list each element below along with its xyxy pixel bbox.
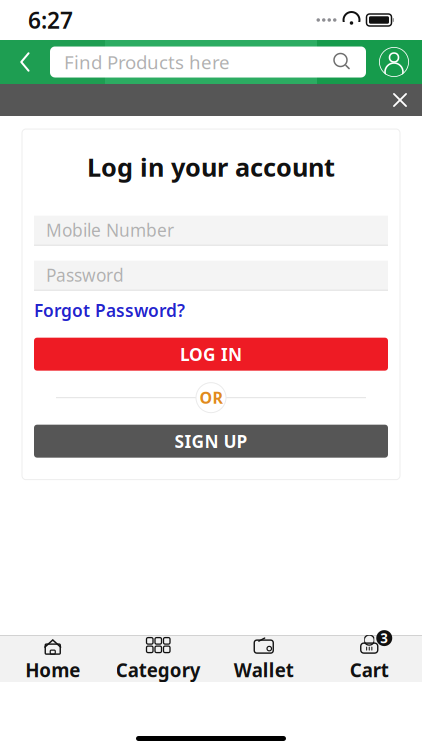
- staticText: Home: [25, 658, 80, 682]
- button[interactable]: Password: [34, 261, 388, 291]
- button[interactable]: Find Products here: [50, 46, 366, 77]
- button[interactable]: Category: [105, 636, 211, 682]
- button[interactable]: Forgot Password?: [34, 299, 185, 322]
- button[interactable]: SIGN UP: [34, 425, 388, 458]
- staticText: SIGN UP: [174, 430, 247, 453]
- staticText: Forgot Password?: [34, 299, 185, 322]
- button[interactable]: Wallet: [211, 636, 316, 682]
- button[interactable]: Mobile Number: [34, 216, 388, 246]
- staticText: LOG IN: [180, 343, 242, 366]
- staticText: Category: [116, 658, 201, 682]
- staticText: Find Products here: [64, 50, 230, 74]
- button[interactable]: Home: [0, 636, 105, 682]
- staticText: 6:27: [28, 5, 73, 35]
- button[interactable]: Account: [366, 40, 422, 84]
- staticText: 3: [380, 629, 388, 647]
- staticText: Cart: [350, 658, 389, 682]
- staticText: Log in your account: [87, 150, 335, 184]
- staticText: Mobile Number: [46, 219, 174, 242]
- button[interactable]: Close: [378, 84, 422, 116]
- staticText: Wallet: [234, 658, 294, 682]
- button[interactable]: LOG IN: [34, 338, 388, 371]
- button[interactable]: 3: [316, 636, 422, 682]
- staticText: Password: [46, 264, 124, 287]
- button[interactable]: Back: [0, 40, 50, 84]
- staticText: OR: [199, 387, 222, 408]
